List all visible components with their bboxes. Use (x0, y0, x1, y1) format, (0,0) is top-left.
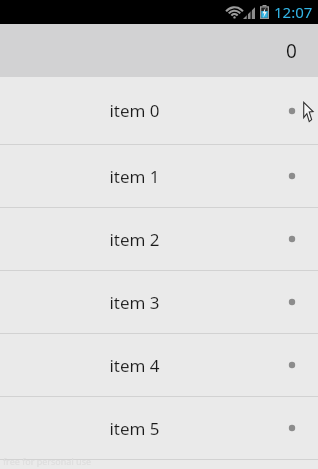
button[interactable]: item 2 (0, 208, 318, 270)
staticText: 12:07 (274, 2, 313, 22)
staticText: item 2 (109, 228, 160, 251)
staticText: item 0 (109, 99, 160, 122)
button[interactable]: 0 (0, 24, 318, 77)
button[interactable]: item 1 (0, 145, 318, 207)
button[interactable]: Select item 0 (285, 104, 299, 118)
button[interactable]: item 4 (0, 334, 318, 396)
button[interactable]: Select item 4 (285, 358, 299, 372)
staticText: item 3 (109, 291, 160, 314)
button[interactable]: item 5 (0, 397, 318, 459)
staticText: item 5 (109, 417, 160, 440)
button[interactable]: Select item 3 (285, 295, 299, 309)
staticText: free for personal use (3, 455, 92, 467)
button[interactable]: Select item 2 (285, 232, 299, 246)
staticText: 0 (286, 38, 297, 64)
button[interactable]: item 0 (0, 77, 318, 144)
staticText: item 4 (109, 354, 160, 377)
staticText: item 1 (109, 165, 160, 188)
button[interactable]: Select item 1 (285, 169, 299, 183)
button[interactable]: item 3 (0, 271, 318, 333)
button[interactable]: Select item 5 (285, 421, 299, 435)
